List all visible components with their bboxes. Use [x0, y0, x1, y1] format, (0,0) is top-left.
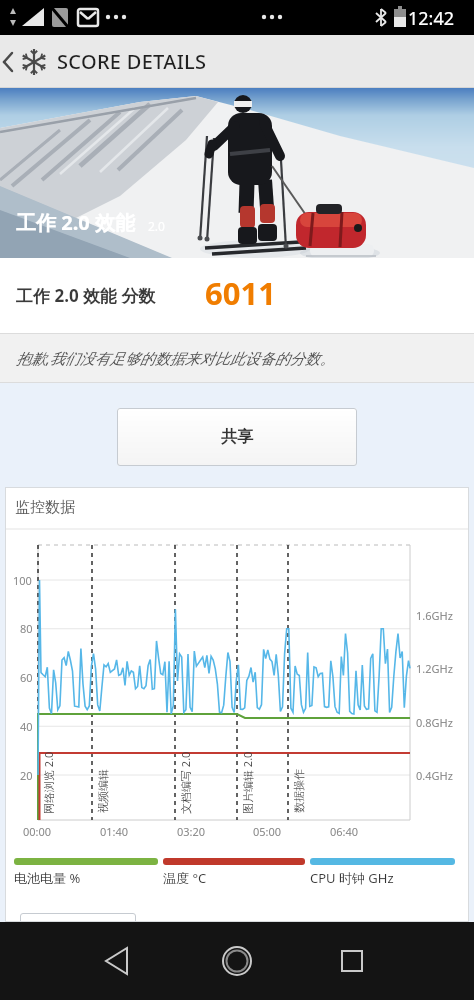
staticText: 05:00 [253, 824, 282, 839]
staticText: 0.8GHz [416, 715, 453, 730]
staticText: 1.2GHz [416, 661, 453, 676]
staticText: 电池电量 % [14, 869, 81, 887]
staticText: 06:40 [330, 824, 359, 839]
staticText: 2.0 [148, 218, 165, 234]
staticText: 监控数据 [15, 498, 75, 517]
staticText: 40 [20, 719, 33, 734]
staticText: 80 [20, 621, 33, 636]
staticText: 温度 °C [163, 869, 207, 887]
staticText: 0.4GHz [416, 768, 453, 783]
staticText: SCORE DETAILS [57, 48, 207, 75]
staticText: 工作 2.0 效能 [16, 209, 135, 236]
staticText: 03:20 [177, 824, 206, 839]
staticText: 20 [20, 768, 33, 783]
staticText: 100 [13, 573, 32, 588]
staticText: 12:42 [408, 6, 455, 31]
staticText: CPU 时钟 GHz [310, 869, 394, 887]
staticText: 工作 2.0 效能 分数 [16, 284, 156, 307]
staticText: 1.6GHz [416, 608, 453, 623]
staticText: 01:40 [100, 824, 129, 839]
staticText: 视频编辑 [96, 769, 110, 813]
staticText: 共享 [221, 427, 253, 447]
staticText: 60 [20, 670, 33, 685]
staticText: 图片编辑 2.0 [240, 751, 255, 814]
staticText: 数据操作 [292, 769, 306, 813]
staticText: 文档编写 2.0 [178, 751, 193, 814]
staticText: 抱歉,我们没有足够的数据来对比此设备的分数。 [16, 348, 335, 368]
staticText: 00:00 [23, 824, 52, 839]
staticText: 网络浏览 2.0 [41, 751, 56, 814]
staticText: 6011 [205, 272, 276, 314]
